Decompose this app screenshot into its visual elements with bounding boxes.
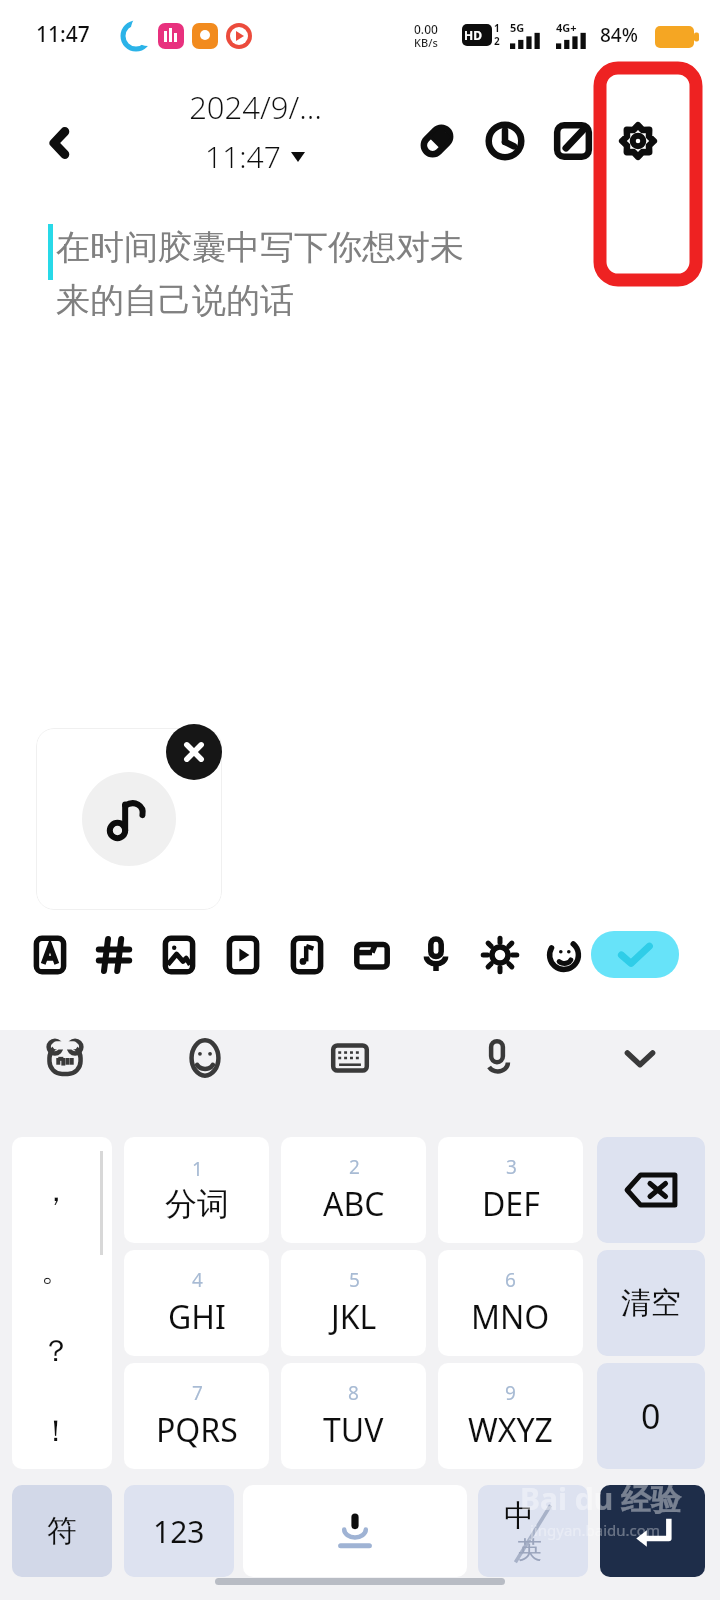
button[interactable]: 3 [438, 1137, 583, 1243]
button[interactable]: ， [12, 1137, 112, 1469]
button[interactable]: 4 [124, 1250, 269, 1356]
button[interactable]: 6 [438, 1250, 583, 1356]
staticText: 在时间胶囊中写下你想对未 来的自己说的话 [56, 226, 676, 322]
staticText: 0 [641, 1393, 661, 1439]
button[interactable]: Image [151, 926, 207, 984]
staticText: 4 [192, 1267, 203, 1293]
staticText: 5 [349, 1267, 360, 1293]
staticText: 84% [600, 22, 638, 48]
button[interactable]: Clock [473, 110, 537, 172]
staticText: 123 [153, 1511, 205, 1552]
button[interactable]: 123 [124, 1485, 234, 1577]
button[interactable]: Brightness [472, 926, 528, 984]
button[interactable]: Folder [344, 926, 400, 984]
staticText: 11:47 [36, 20, 90, 49]
button[interactable]: Hide keyboard [606, 1028, 674, 1088]
staticText: 1 [494, 21, 500, 35]
button[interactable]: Settings [606, 110, 670, 172]
button[interactable]: Switch Chinese English [478, 1485, 588, 1577]
staticText: 5G [510, 20, 525, 35]
button[interactable]: 2 [281, 1137, 426, 1243]
staticText: 分词 [165, 1184, 229, 1224]
staticText: ？ [41, 1332, 71, 1370]
staticText: 2 [494, 34, 500, 48]
button[interactable]: 0 [597, 1363, 705, 1469]
button[interactable]: 9 [438, 1363, 583, 1469]
staticText: 3 [506, 1154, 517, 1180]
staticText: 2 [349, 1154, 360, 1180]
staticText: 1 [192, 1156, 203, 1182]
staticText: 英 [518, 1535, 542, 1565]
staticText: 9 [505, 1380, 516, 1406]
staticText: 中 [504, 1497, 534, 1535]
button[interactable]: Video [215, 926, 271, 984]
staticText: 符 [47, 1512, 77, 1550]
staticText: Bai du 经验 [520, 1478, 681, 1519]
staticText: PQRS [156, 1408, 238, 1452]
staticText: WXYZ [468, 1408, 553, 1452]
staticText: 2024/9/… [189, 86, 322, 128]
button[interactable]: 5 [281, 1250, 426, 1356]
staticText: 11:47 [205, 136, 281, 177]
button[interactable]: 1 [124, 1137, 269, 1243]
button[interactable]: Edit [541, 110, 605, 172]
button[interactable]: Baidu input [31, 1028, 99, 1088]
staticText: 7 [192, 1380, 203, 1406]
staticText: 清空 [621, 1284, 681, 1322]
staticText: ABC [323, 1182, 385, 1226]
button[interactable]: 8 [281, 1363, 426, 1469]
staticText: jingyan.baidu.com [530, 1520, 660, 1540]
button[interactable]: 2024/9/… [150, 86, 360, 177]
button[interactable]: Backspace [597, 1137, 705, 1243]
button[interactable]: Emoji [536, 926, 592, 984]
button[interactable] [36, 728, 222, 910]
staticText: 6 [505, 1267, 516, 1293]
button[interactable]: Space [243, 1485, 467, 1577]
button[interactable]: Text style [22, 926, 78, 984]
staticText: ！ [41, 1412, 71, 1450]
button[interactable]: Voice input [463, 1028, 531, 1088]
staticText: MNO [471, 1295, 550, 1339]
button[interactable]: Emoji [171, 1028, 239, 1088]
staticText: GHI [168, 1295, 226, 1339]
button[interactable]: Keyboard layout [316, 1028, 384, 1088]
staticText: 8 [348, 1380, 359, 1406]
staticText: 。 [41, 1252, 71, 1290]
button[interactable]: Tag [86, 926, 142, 984]
staticText: DEF [482, 1182, 540, 1226]
staticText: ， [41, 1172, 71, 1210]
button[interactable]: Remove attachment [166, 724, 222, 780]
button[interactable]: Music [279, 926, 335, 984]
staticText: JKL [331, 1295, 377, 1339]
button[interactable]: Enter [600, 1485, 705, 1577]
button[interactable]: 清空 [597, 1250, 705, 1356]
staticText: KB/s [414, 35, 438, 50]
button[interactable]: Back [22, 110, 98, 176]
button[interactable]: 符 [12, 1485, 112, 1577]
button[interactable]: Voice [408, 926, 464, 984]
staticText: 4G+ [556, 20, 577, 35]
staticText: TUV [323, 1408, 384, 1452]
staticText: 0.00 [414, 21, 438, 37]
button[interactable]: 7 [124, 1363, 269, 1469]
button[interactable]: Capsule [405, 110, 469, 172]
staticText: HD [464, 27, 482, 43]
button[interactable]: Confirm [591, 931, 679, 978]
